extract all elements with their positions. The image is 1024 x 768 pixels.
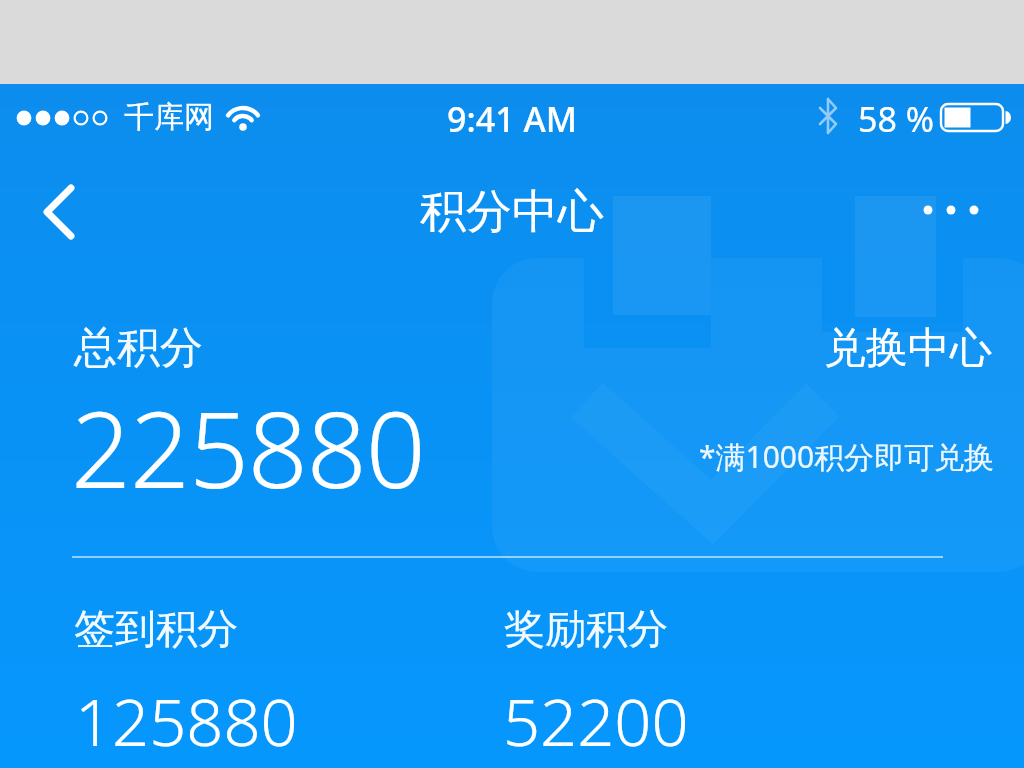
staticText: 兑换中心 [824,322,992,375]
button[interactable]: 兑换中心 [824,322,992,375]
staticText: 签到积分 [74,604,238,656]
staticText: 积分中心 [420,183,604,241]
staticText: 125880 [75,677,298,766]
staticText: 52200 [503,677,689,766]
button[interactable] [905,182,995,237]
staticText: 225880 [71,376,425,519]
staticText: 58 % [858,96,934,142]
staticText: 总积分 [74,321,203,375]
staticText: 千库网 [124,98,214,136]
staticText: 奖励积分 [504,604,668,656]
staticText: 9:41 AM [447,96,577,142]
button[interactable] [30,180,90,240]
staticText: *满1000积分即可兑换 [699,436,995,477]
